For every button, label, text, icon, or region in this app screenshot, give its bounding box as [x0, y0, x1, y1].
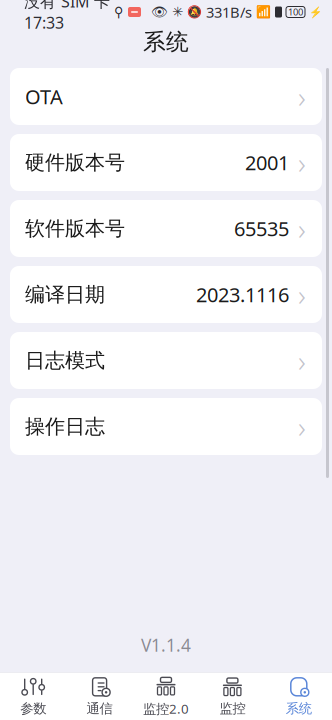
staticText: ⚲	[110, 4, 124, 19]
staticText: 🔕	[187, 5, 202, 19]
staticText: 监控2.0	[143, 700, 189, 717]
staticText: ›	[298, 209, 306, 248]
button[interactable]: 参数	[0, 673, 66, 720]
button[interactable]: 监控	[199, 673, 266, 720]
button[interactable]: 系统	[266, 673, 332, 720]
staticText: 100	[288, 6, 303, 18]
staticText: 👁	[151, 4, 168, 20]
button[interactable]: 硬件版本号	[10, 134, 322, 191]
button[interactable]: 通信	[66, 673, 133, 720]
staticText: 系统	[143, 28, 189, 56]
staticText: 硬件版本号	[25, 150, 125, 175]
staticText: V1.1.4	[141, 633, 191, 656]
button[interactable]: OTA	[10, 68, 322, 125]
button[interactable]: 操作日志	[10, 398, 322, 455]
staticText: ✳	[172, 4, 183, 19]
staticText: ›	[298, 77, 306, 116]
staticText: 331B/s	[206, 2, 252, 22]
staticText: 没有 SIM 卡 17:33	[24, 0, 110, 33]
button[interactable]: 日志模式	[10, 332, 322, 389]
staticText: 软件版本号	[25, 216, 125, 241]
staticText: ⚡	[309, 6, 322, 18]
staticText: 编译日期	[25, 282, 105, 307]
staticText: 2001	[245, 149, 289, 176]
staticText: 参数	[20, 700, 46, 717]
button[interactable]: 软件版本号	[10, 200, 322, 257]
staticText: 日志模式	[25, 348, 105, 373]
button[interactable]: 监控2.0	[133, 673, 199, 720]
staticText: 2023.1116	[196, 281, 289, 308]
staticText: 操作日志	[25, 414, 105, 439]
staticText: 📶	[256, 5, 271, 19]
staticText: 通信	[87, 700, 113, 717]
staticText: 系统	[286, 700, 312, 717]
button[interactable]: 编译日期	[10, 266, 322, 323]
staticText: ›	[298, 275, 306, 314]
staticText: 65535	[234, 215, 289, 242]
staticText: OTA	[25, 83, 63, 110]
staticText: ›	[298, 341, 306, 380]
staticText: ›	[298, 143, 306, 182]
staticText: ›	[298, 407, 306, 446]
staticText: 监控	[219, 700, 245, 717]
